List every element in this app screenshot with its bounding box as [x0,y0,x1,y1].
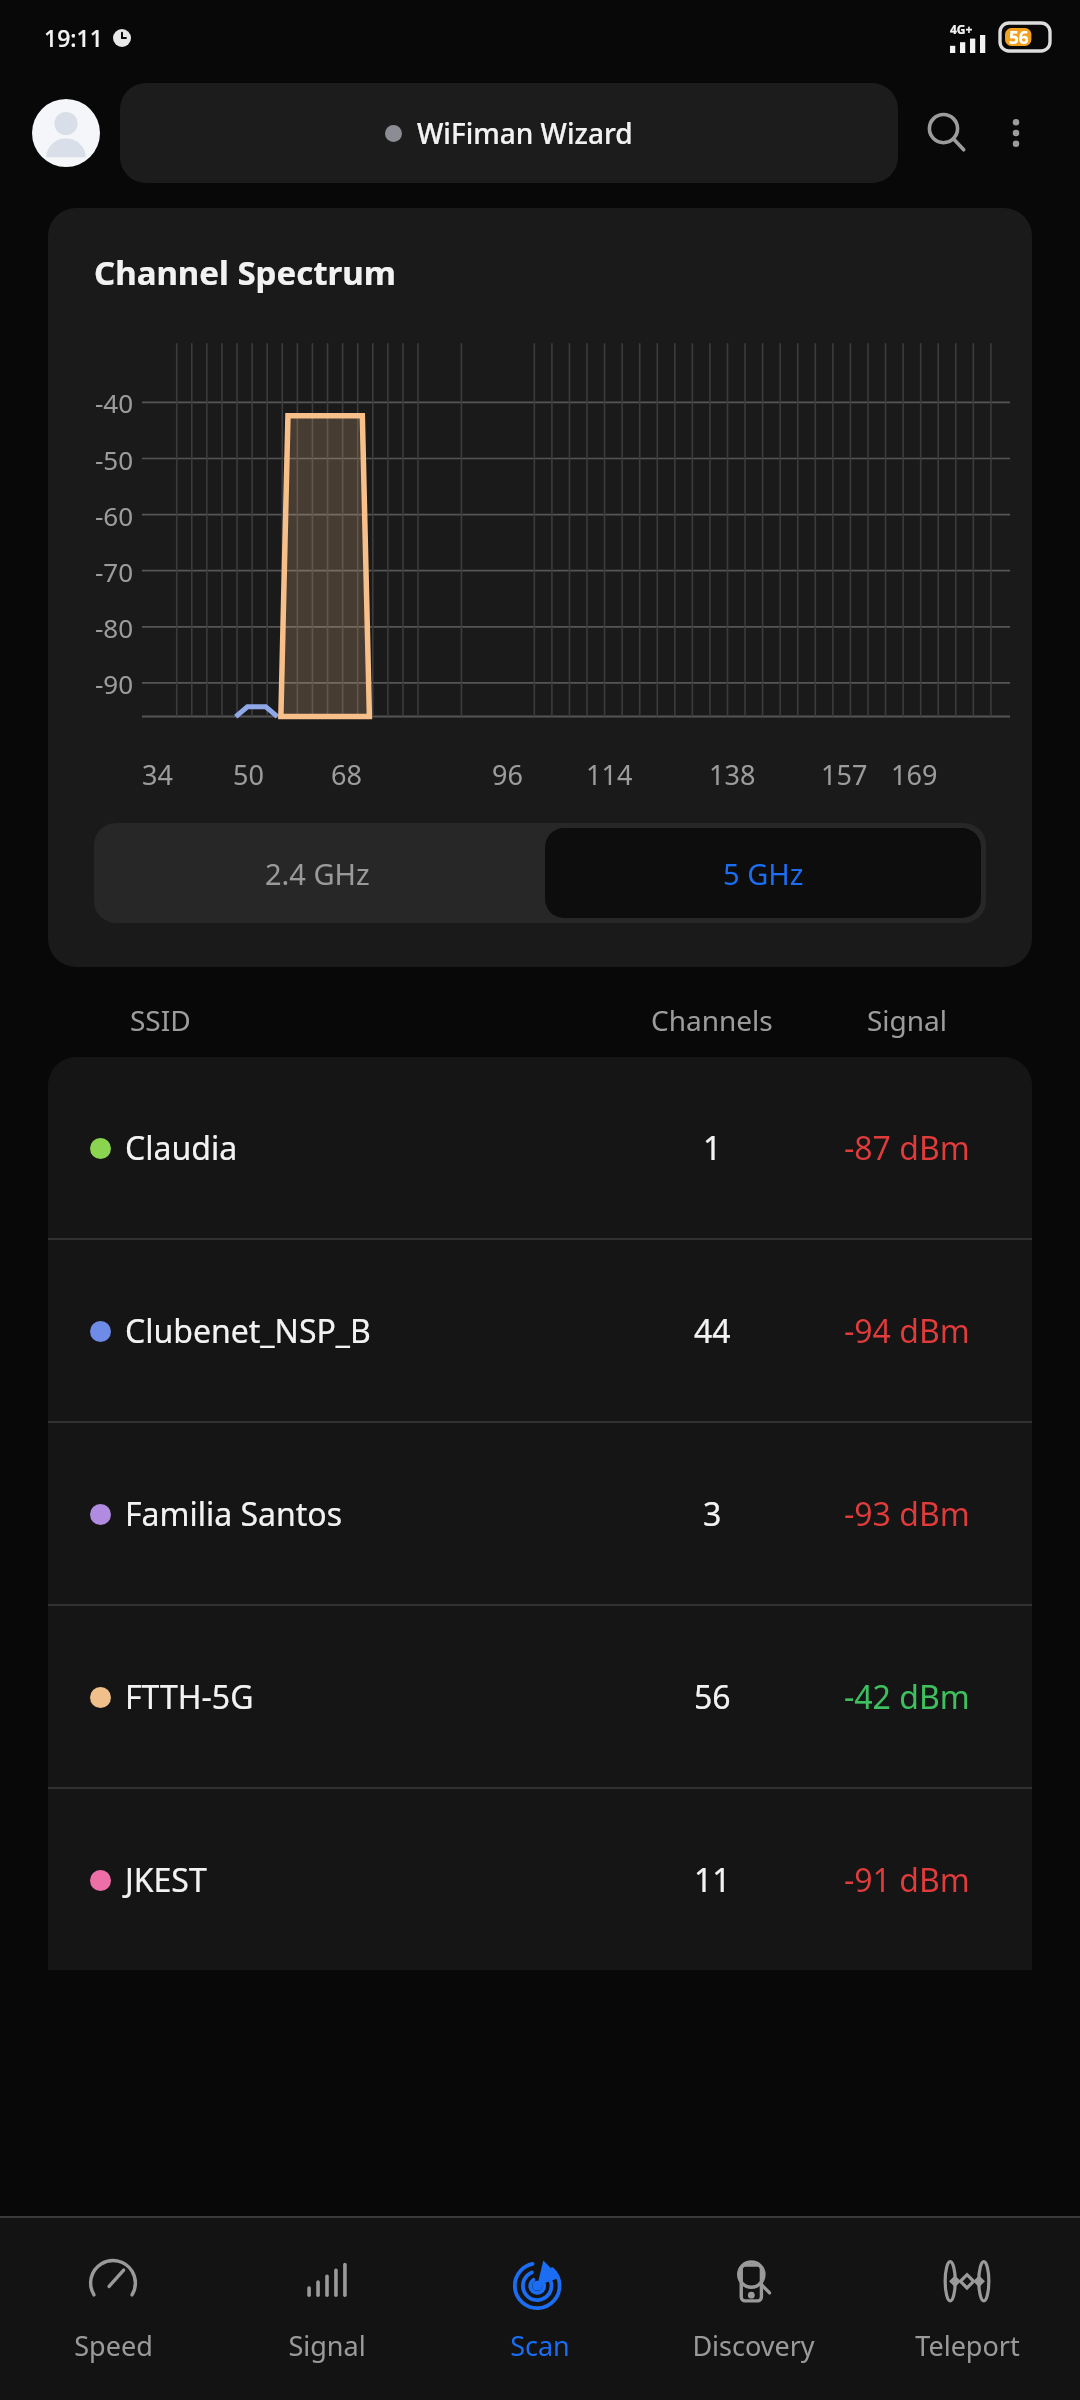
staticText: -80 [95,610,134,645]
staticText: Discovery [692,2327,815,2364]
staticText: Signal [867,1001,948,1039]
button[interactable]: Clubenet_NSP_B [48,1240,1032,1421]
button[interactable]: 5 GHz [545,828,981,918]
staticText: Familia Santos [125,1492,343,1536]
button[interactable]: 2.4 GHz [94,823,540,923]
staticText: -50 [95,442,134,477]
staticText: -87 dBm [844,1126,970,1170]
staticText: 3 [703,1492,722,1536]
staticText: Channel Spectrum [94,250,396,295]
staticText: -42 dBm [844,1675,970,1719]
staticText: Teleport [915,2327,1020,2364]
button[interactable]: Account [32,99,100,167]
staticText: Channels [651,1001,773,1039]
staticText: 4G+ [950,21,973,37]
button[interactable]: JKEST [48,1789,1032,1970]
staticText: -60 [95,498,134,533]
staticText: -91 dBm [844,1858,970,1902]
staticText: 157 [821,756,868,793]
staticText: -70 [95,554,134,589]
staticText: 5 GHz [723,854,804,893]
staticText: -94 dBm [844,1309,970,1353]
staticText: 44 [694,1309,731,1353]
button[interactable]: WiFiman Wizard [120,83,898,183]
staticText: 56 [1009,26,1029,49]
staticText: JKEST [125,1858,207,1902]
staticText: 50 [233,756,264,793]
staticText: Claudia [125,1126,238,1170]
button[interactable]: Search [910,96,984,170]
button[interactable]: More options [984,101,1048,165]
staticText: 114 [586,756,633,793]
staticText: Speed [74,2327,153,2364]
button[interactable]: Claudia [48,1057,1032,1238]
button[interactable]: Discovery [653,2218,853,2400]
staticText: 19:11 [44,22,103,53]
staticText: Scan [510,2327,570,2364]
button[interactable]: Teleport [867,2218,1067,2400]
staticText: 169 [891,756,938,793]
staticText: 11 [694,1858,731,1902]
staticText: 96 [492,756,523,793]
staticText: WiFiman Wizard [417,114,633,152]
staticText: 2.4 GHz [265,854,370,893]
staticText: 68 [331,756,362,793]
staticText: 56 [694,1675,731,1719]
staticText: -93 dBm [844,1492,970,1536]
staticText: -90 [95,666,134,701]
button[interactable]: Speed [13,2218,213,2400]
staticText: 138 [709,756,756,793]
staticText: FTTH-5G [125,1675,254,1719]
button[interactable]: Familia Santos [48,1423,1032,1604]
staticText: 1 [703,1126,722,1170]
staticText: SSID [130,1001,191,1039]
staticText: Signal [288,2327,366,2364]
button[interactable]: Scan [440,2218,640,2400]
staticText: 34 [142,756,173,793]
staticText: -40 [95,385,134,420]
button[interactable]: Signal [227,2218,427,2400]
staticText: Clubenet_NSP_B [125,1309,371,1353]
button[interactable]: FTTH-5G [48,1606,1032,1787]
